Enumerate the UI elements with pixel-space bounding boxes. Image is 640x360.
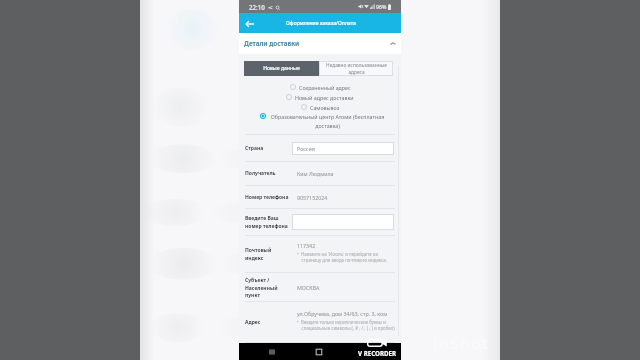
staticText: Образовательный центр Атоми (бесплатная … — [269, 113, 386, 130]
button[interactable]: Образовательный центр Атоми (бесплатная … — [260, 113, 386, 130]
button[interactable]: Страна — [239, 135, 401, 162]
staticText: 96% — [376, 3, 387, 10]
staticText: Почтовый индекс — [245, 247, 292, 261]
staticText: Россия — [297, 145, 315, 152]
staticText: Номер телефона — [245, 194, 292, 201]
staticText: • Нажмите на 'Искать' и перейдите на стр… — [297, 251, 398, 263]
staticText: Введите Ваш номер телефона — [245, 215, 292, 229]
button[interactable]: Недавно использованные адреса — [319, 61, 393, 76]
staticText: V RECORDER — [358, 349, 397, 357]
button[interactable]: Получатель — [239, 162, 401, 186]
staticText: Страна — [245, 145, 292, 152]
button[interactable]: Введите Ваш номер телефона — [239, 209, 401, 236]
button[interactable]: Home — [312, 345, 326, 359]
button[interactable]: Новый адрес доставки — [286, 92, 354, 102]
staticText: Оформление заказа/Оплата — [286, 20, 356, 27]
staticText: Сохраненный адрес — [299, 84, 351, 91]
staticText: 9057152024 — [297, 194, 328, 201]
button[interactable]: Номер телефона — [239, 186, 401, 209]
staticText: Новые данные — [263, 65, 300, 72]
button[interactable]: V RECORDER — [358, 349, 397, 357]
button[interactable]: Сохраненный адрес — [290, 82, 351, 92]
other: Screen recorder — [367, 339, 387, 347]
button[interactable]: Детали доставки — [239, 33, 401, 54]
staticText: ул.Обручева, дом 34/63, стр. 3, ком — [297, 310, 388, 317]
staticText: 117342 — [297, 242, 316, 249]
staticText: Адрес — [245, 319, 292, 326]
staticText: Получатель — [245, 170, 292, 177]
button[interactable]: Субъект / Населенный пункт — [239, 273, 401, 302]
button[interactable]: Самовывоз — [301, 102, 340, 112]
staticText: Ким Людмила — [297, 170, 334, 177]
button[interactable]: Новые данные — [244, 61, 319, 76]
button[interactable]: Адрес — [239, 302, 401, 343]
button[interactable]: Почтовый индекс — [239, 236, 401, 273]
staticText: Детали доставки — [244, 39, 300, 48]
button[interactable]: Recent apps — [265, 345, 279, 359]
button[interactable]: Back — [242, 16, 257, 31]
staticText: 22:10 — [249, 3, 265, 11]
staticText: • Введите только кириллические буквы и с… — [297, 319, 398, 331]
staticText: Недавно использованные адреса — [326, 62, 387, 76]
staticText: Субъект / Населенный пункт — [245, 277, 292, 298]
staticText: Самовывоз — [310, 104, 340, 111]
staticText: МОСКВА — [297, 284, 320, 291]
staticText: Новый адрес доставки — [295, 94, 354, 101]
